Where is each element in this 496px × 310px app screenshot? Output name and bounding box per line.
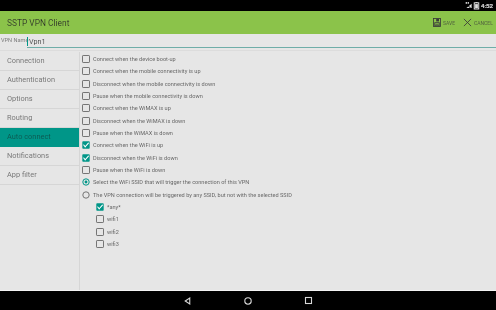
- button[interactable]: Connection: [0, 52, 79, 71]
- button[interactable]: Connect when the device boot-up: [82, 55, 176, 63]
- staticText: The VPN connection will be triggered by …: [93, 192, 292, 199]
- staticText: *any*: [107, 204, 121, 211]
- staticText: VPN Name: [1, 37, 29, 44]
- staticText: App filter: [7, 170, 37, 179]
- button[interactable]: App filter: [0, 166, 79, 185]
- staticText: Routing: [7, 113, 33, 122]
- staticText: Pause when the WiMAX is down: [93, 130, 173, 137]
- staticText: Notifications: [7, 151, 50, 160]
- staticText: wifi2: [107, 229, 119, 236]
- staticText: SSTP VPN Client: [7, 18, 70, 28]
- staticText: Connection: [7, 56, 45, 65]
- button[interactable]: Pause when the WiMAX is down: [82, 129, 173, 137]
- button[interactable]: Back: [158, 291, 218, 310]
- button[interactable]: Notifications: [0, 147, 79, 166]
- button[interactable]: Disconnect when the WiFi is down: [82, 154, 178, 162]
- staticText: Vpn1: [29, 37, 46, 45]
- staticText: SAVE: [443, 20, 456, 26]
- button[interactable]: Recent apps: [278, 291, 338, 310]
- button[interactable]: Connect when the WiMAX is up: [82, 104, 171, 112]
- button[interactable]: Select the WiFi SSID that will trigger t…: [82, 178, 250, 186]
- button[interactable]: SAVE: [432, 15, 457, 30]
- staticText: wifi3: [107, 241, 119, 248]
- staticText: Connect when the WiMAX is up: [93, 105, 171, 112]
- button[interactable]: Options: [0, 90, 79, 109]
- staticText: Authentication: [7, 75, 55, 84]
- button[interactable]: Disconnect when the WiMAX is down: [82, 117, 186, 125]
- staticText: Connect when the device boot-up: [93, 56, 176, 63]
- button[interactable]: CANCEL: [462, 15, 494, 30]
- staticText: Auto connect: [7, 132, 51, 141]
- staticText: wifi1: [107, 216, 119, 223]
- button[interactable]: *any*: [96, 203, 121, 211]
- staticText: Disconnect when the WiMAX is down: [93, 118, 186, 125]
- button[interactable]: Vpn1: [27, 34, 496, 48]
- button[interactable]: Pause when the mobile connectivity is do…: [82, 92, 203, 100]
- button[interactable]: Disconnect when the mobile connectivity …: [82, 80, 216, 88]
- button[interactable]: Routing: [0, 109, 79, 128]
- staticText: Disconnect when the mobile connectivity …: [93, 81, 216, 88]
- staticText: Pause when the mobile connectivity is do…: [93, 93, 203, 100]
- button[interactable]: wifi2: [96, 228, 119, 236]
- staticText: Disconnect when the WiFi is down: [93, 155, 178, 162]
- button[interactable]: Connect when the mobile connectivity is …: [82, 67, 201, 75]
- button[interactable]: Auto connect: [0, 128, 79, 147]
- button[interactable]: Home: [218, 291, 278, 310]
- staticText: CANCEL: [474, 20, 493, 26]
- staticText: Connect when the mobile connectivity is …: [93, 68, 201, 75]
- staticText: Connect when the WiFi is up: [93, 142, 164, 149]
- staticText: 4:52: [481, 2, 493, 9]
- staticText: Pause when the WiFi is down: [93, 167, 166, 174]
- staticText: Select the WiFi SSID that will trigger t…: [93, 179, 250, 186]
- staticText: Options: [7, 94, 33, 103]
- button[interactable]: wifi3: [96, 240, 119, 248]
- button[interactable]: Authentication: [0, 71, 79, 90]
- button[interactable]: The VPN connection will be triggered by …: [82, 191, 292, 199]
- button[interactable]: Connect when the WiFi is up: [82, 141, 164, 149]
- button[interactable]: Pause when the WiFi is down: [82, 166, 166, 174]
- button[interactable]: wifi1: [96, 215, 119, 223]
